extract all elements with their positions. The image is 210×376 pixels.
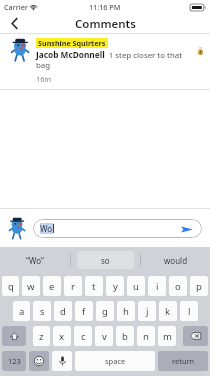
staticText: return <box>172 356 195 366</box>
staticText: Comments <box>75 16 136 32</box>
staticText: t <box>92 280 96 293</box>
button[interactable]: space <box>75 351 155 371</box>
staticText: q <box>8 280 14 293</box>
button[interactable]: f <box>75 301 93 321</box>
staticText: Sunshine Squirters <box>38 38 106 48</box>
staticText: h <box>123 305 129 318</box>
button[interactable]: b <box>116 326 134 346</box>
staticText: i <box>156 280 159 293</box>
button[interactable]: e <box>43 276 61 296</box>
button[interactable]: j <box>138 301 156 321</box>
button[interactable]: a <box>13 301 30 321</box>
button[interactable]: Sunshine Squirters <box>0 34 210 89</box>
staticText: so <box>101 255 110 266</box>
button[interactable]: s <box>33 301 51 321</box>
button[interactable]: h <box>117 301 135 321</box>
button[interactable]: q <box>2 276 19 296</box>
staticText: u <box>133 280 139 293</box>
button[interactable]: return <box>158 351 208 371</box>
button[interactable]: c <box>74 326 92 346</box>
button[interactable]: x <box>53 326 71 346</box>
button[interactable]: Emoji <box>29 351 49 371</box>
button[interactable]: w <box>22 276 40 296</box>
button[interactable]: p <box>190 276 208 296</box>
staticText: “Wo” <box>26 255 44 266</box>
button[interactable]: l <box>180 301 198 321</box>
staticText: g <box>102 305 108 318</box>
button[interactable]: u <box>127 276 145 296</box>
staticText: k <box>165 305 171 318</box>
staticText: b <box>122 330 128 343</box>
staticText: would <box>164 255 188 266</box>
button[interactable]: d <box>54 301 72 321</box>
button[interactable]: m <box>158 326 176 346</box>
button[interactable]: t <box>85 276 103 296</box>
staticText: l <box>188 305 191 318</box>
staticText: p <box>196 280 202 293</box>
staticText: Wo <box>40 223 53 234</box>
staticText: 123 <box>8 356 21 366</box>
button[interactable]: 123 <box>2 351 26 371</box>
button[interactable]: Backspace <box>183 326 208 346</box>
staticText: z <box>39 330 44 343</box>
staticText: 11:16 PM <box>89 2 121 12</box>
staticText: s <box>40 305 45 318</box>
button[interactable]: Dictation <box>52 351 72 371</box>
staticText: j <box>146 305 149 318</box>
button[interactable]: v <box>95 326 113 346</box>
button[interactable]: g <box>96 301 114 321</box>
button[interactable]: Back <box>0 14 28 33</box>
button[interactable]: r <box>64 276 82 296</box>
staticText: space <box>105 356 126 366</box>
staticText: y <box>113 280 118 293</box>
staticText: Jacob McDonnell 1 step closer to that ba… <box>36 49 197 71</box>
staticText: c <box>81 330 86 343</box>
staticText: a <box>19 305 25 318</box>
staticText: v <box>102 330 107 343</box>
staticText: n <box>143 330 149 343</box>
button[interactable]: so <box>77 251 134 269</box>
staticText: e <box>49 280 55 293</box>
button[interactable]: Shift <box>2 326 26 346</box>
staticText: m <box>163 330 172 343</box>
button[interactable]: would <box>147 251 204 269</box>
button[interactable]: y <box>106 276 124 296</box>
staticText: r <box>71 280 75 293</box>
button[interactable]: i <box>148 276 166 296</box>
staticText: d <box>60 305 66 318</box>
button[interactable]: Wo <box>33 219 202 238</box>
button[interactable]: Send <box>179 221 195 237</box>
button[interactable]: n <box>137 326 155 346</box>
staticText: Carrier <box>4 2 28 12</box>
staticText: w <box>27 280 35 293</box>
staticText: 16m <box>36 74 52 84</box>
button[interactable]: k <box>159 301 177 321</box>
staticText: o <box>175 280 181 293</box>
button[interactable]: o <box>169 276 187 296</box>
button[interactable]: “Wo” <box>6 251 64 269</box>
staticText: x <box>59 330 65 343</box>
staticText: f <box>82 305 86 318</box>
button[interactable]: z <box>33 326 50 346</box>
